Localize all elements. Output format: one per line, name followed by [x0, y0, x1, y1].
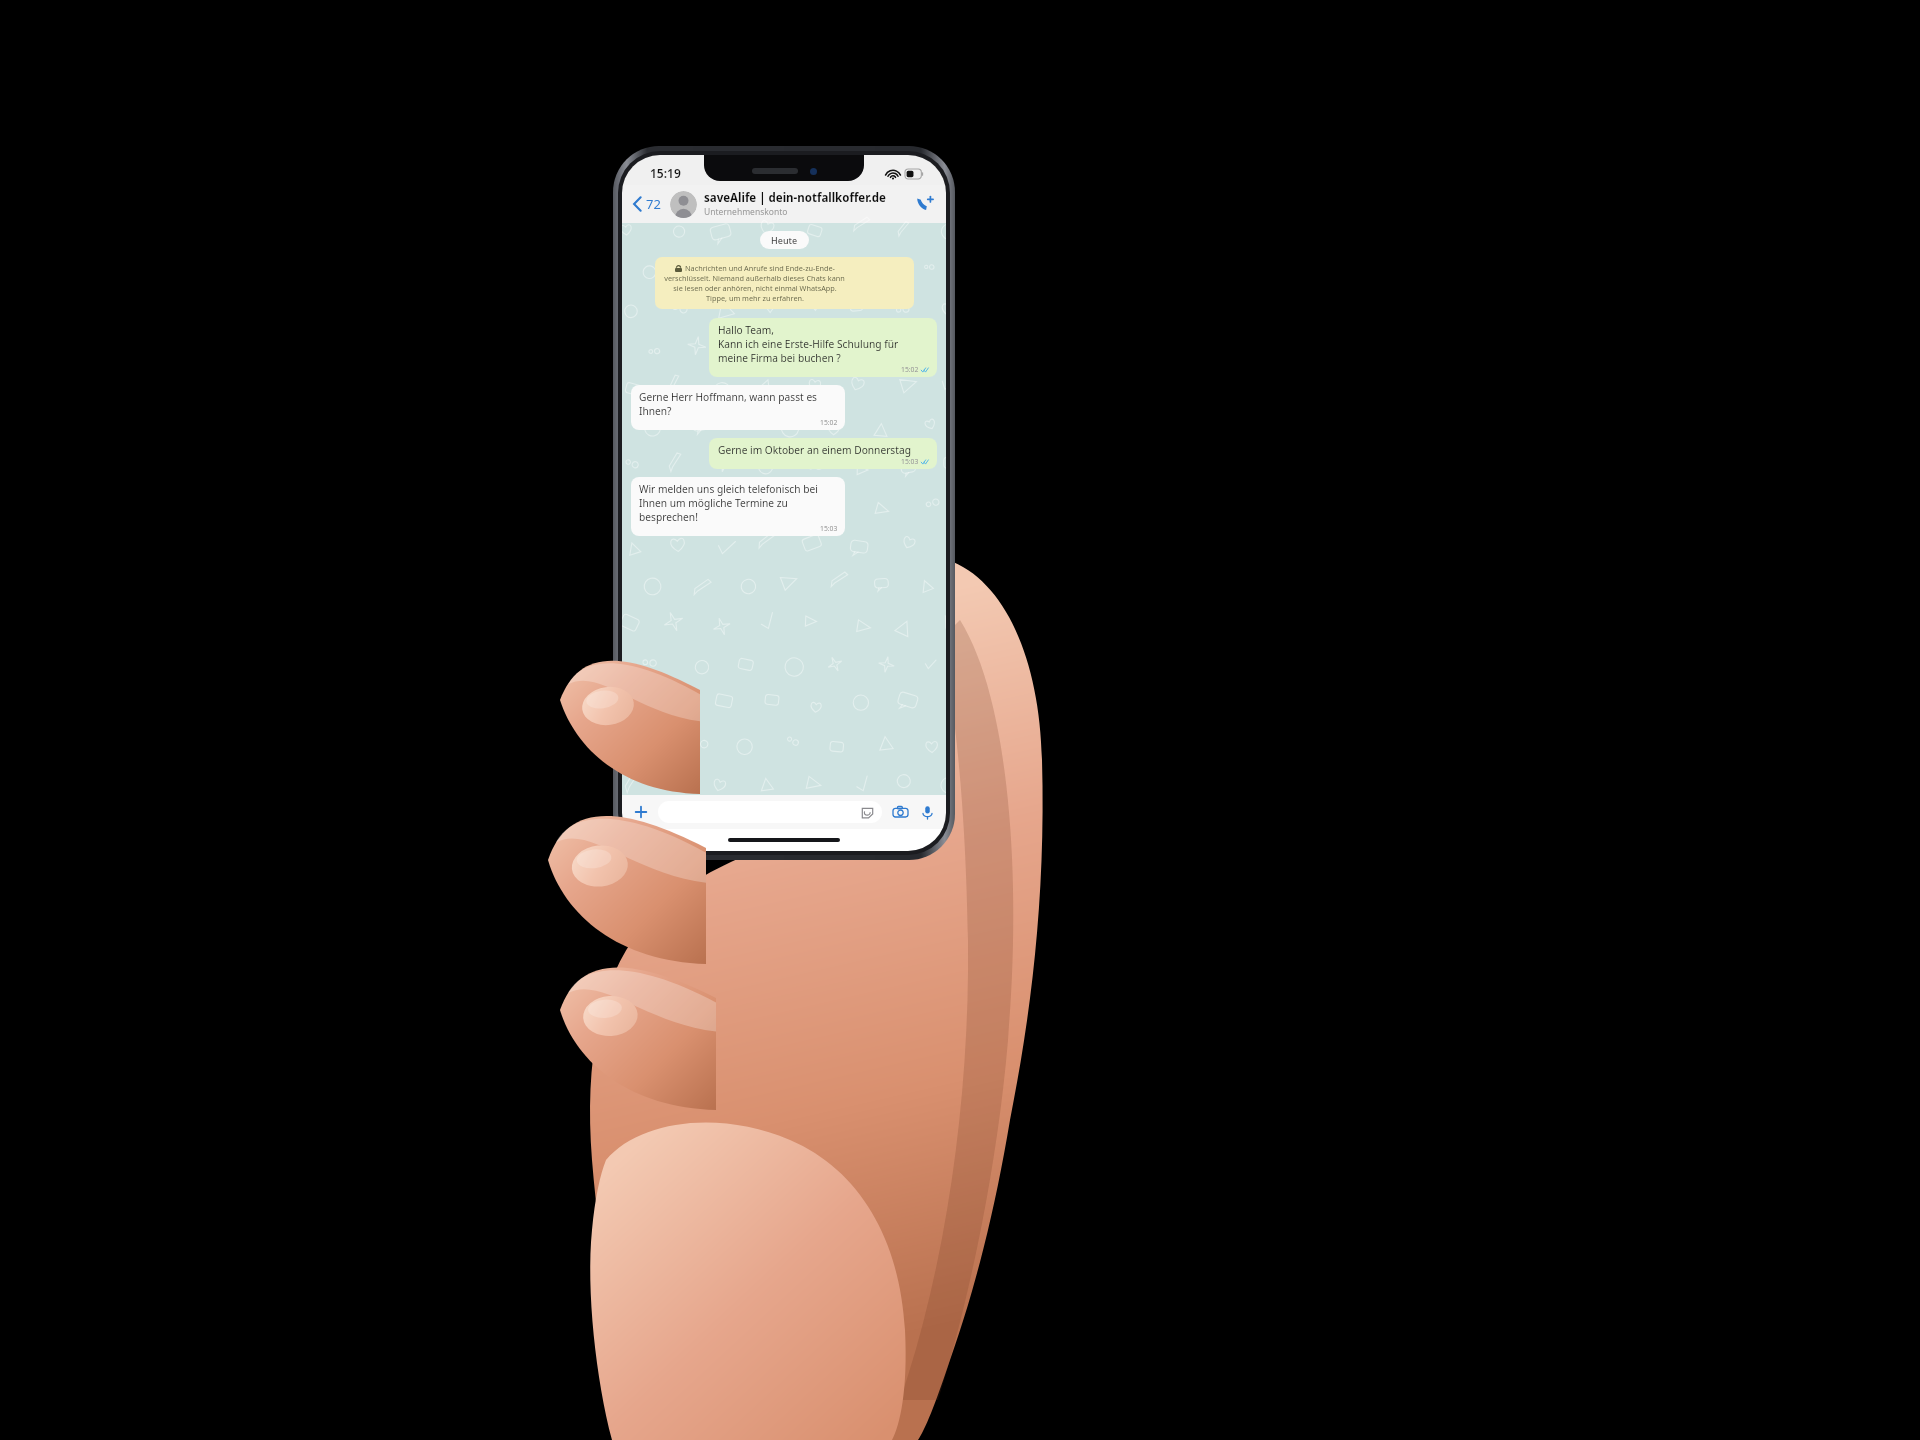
staticText: saveAlife | dein-notfallkoffer.de	[704, 190, 886, 206]
staticText: Hallo Team,	[718, 323, 774, 337]
staticText: Ihnen?	[639, 404, 672, 418]
staticText: Heute	[771, 234, 798, 246]
staticText: Gerne Herr Hoffmann, wann passt es	[639, 390, 818, 404]
staticText: Wir melden uns gleich telefonisch bei	[639, 482, 818, 496]
other: Stickers	[861, 806, 874, 819]
staticText: 72	[646, 195, 661, 213]
staticText: Unternehmenskonto	[704, 206, 788, 218]
staticText: 15:02	[820, 418, 838, 427]
button[interactable]: Wir melden uns gleich telefonisch bei	[631, 477, 845, 536]
staticText: sie lesen oder anhören, nicht einmal Wha…	[673, 283, 837, 293]
button[interactable]: Call	[912, 191, 938, 217]
staticText: Ihnen um mögliche Termine zu	[639, 496, 788, 510]
button[interactable]: Camera	[889, 801, 911, 823]
button[interactable]: Nachrichten und Anrufe sind Ende-zu-Ende…	[655, 257, 914, 309]
button[interactable]: Gerne im Oktober an einem Donnerstag	[709, 438, 937, 469]
staticText: 15:19	[650, 165, 681, 181]
staticText: 15:02	[901, 365, 919, 374]
button[interactable]: Hallo Team,	[709, 318, 937, 377]
staticText: Nachrichten und Anrufe sind Ende-zu-Ende…	[685, 263, 835, 273]
button[interactable]: Voice message	[916, 801, 938, 823]
staticText: Tippe, um mehr zu erfahren.	[706, 293, 804, 303]
button[interactable]: Back	[630, 191, 664, 217]
button[interactable]: Stickers	[658, 801, 882, 823]
staticText: Kann ich eine Erste-Hilfe Schulung für	[718, 337, 899, 351]
staticText: Gerne im Oktober an einem Donnerstag	[718, 443, 911, 457]
staticText: verschlüsselt. Niemand außerhalb dieses …	[664, 273, 845, 283]
staticText: 15:03	[820, 524, 838, 533]
button[interactable]: Gerne Herr Hoffmann, wann passt es	[631, 385, 845, 430]
staticText: besprechen!	[639, 510, 698, 524]
staticText: 15:03	[901, 457, 919, 466]
staticText: meine Firma bei buchen ?	[718, 351, 841, 365]
button[interactable]: Attach	[630, 801, 652, 823]
button[interactable]: Heute	[760, 231, 809, 249]
button[interactable]: saveAlife | dein-notfallkoffer.de	[704, 190, 908, 218]
button[interactable]: Contact avatar	[670, 191, 697, 218]
